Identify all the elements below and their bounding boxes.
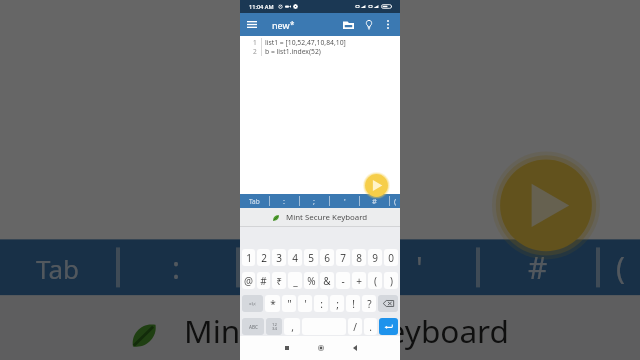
button[interactable]: Open file [338,13,358,36]
staticText: " [287,297,292,311]
staticText: 8 [356,251,362,265]
staticText: _ [293,274,298,288]
staticText: ? [367,297,372,311]
button[interactable]: 9 [368,249,382,266]
button[interactable]: 12 34 [266,318,282,335]
staticText: 9 [372,251,378,265]
button[interactable]: Tab [0,239,116,295]
staticText: ₹ [276,274,282,288]
button[interactable]: 1 [242,249,255,266]
button[interactable]: ; [330,295,344,312]
staticText: 2 [261,251,267,265]
button[interactable]: + [352,272,366,289]
button[interactable]: # [480,239,596,295]
staticText: # [260,274,267,288]
staticText: ' [304,297,307,311]
staticText: % [307,274,316,288]
staticText: ' [416,247,424,287]
staticText: new [272,19,290,31]
button[interactable]: # [360,194,389,208]
staticText: - [341,274,345,288]
button[interactable]: 3 [272,249,286,266]
button[interactable]: Recent apps [278,338,295,358]
staticText: : [172,247,184,287]
button[interactable]: # [257,272,270,289]
button[interactable]: Enter [379,318,398,335]
button[interactable]: Tab [240,194,269,208]
button[interactable]: ! [346,295,360,312]
button[interactable]: ' [360,239,476,295]
staticText: ABC [249,324,258,330]
button[interactable]: ABC [242,318,264,335]
staticText: @ [244,274,253,288]
staticText: list1 = [10,52,47,10,84,10] [265,38,346,47]
button[interactable]: Run program [492,151,600,259]
button[interactable]: ( [600,239,640,295]
button[interactable]: % [304,272,318,289]
staticText: Tab [36,251,80,287]
staticText: 1 [246,251,252,265]
button[interactable]: 5 [304,249,318,266]
staticText: # [528,247,548,287]
button[interactable]: " [282,295,296,312]
staticText: 1 [253,38,257,47]
button[interactable]: . [364,318,377,335]
button[interactable]: ) [384,272,398,289]
button[interactable]: 0 [384,249,398,266]
button[interactable]: ( [368,272,382,289]
staticText: b = list1.index(52) [265,47,321,56]
button[interactable]: 4 [288,249,302,266]
staticText: : [320,297,323,311]
staticText: ! [352,297,355,311]
button[interactable]: * [265,295,280,312]
staticText: ' [344,196,346,206]
button[interactable]: / [348,318,362,335]
staticText: Mint Secure Keyboard [286,212,368,223]
button[interactable]: =\< [242,295,263,312]
button[interactable]: : [314,295,328,312]
staticText: ; [336,297,339,311]
button[interactable]: , [284,318,300,335]
button[interactable]: ' [298,295,312,312]
button[interactable]: ' [330,194,359,208]
staticText: 12 34 [272,321,277,332]
staticText: 0 [388,251,394,265]
button[interactable]: Hints [359,13,379,36]
button[interactable]: - [336,272,350,289]
button[interactable]: _ [288,272,302,289]
button[interactable]: Back [346,338,363,358]
button[interactable]: ₹ [272,272,286,289]
staticText: * [290,19,295,30]
button[interactable]: ; [240,239,356,295]
button[interactable]: Run program [363,172,390,199]
button[interactable]: 8 [352,249,366,266]
button[interactable]: 2 [257,249,270,266]
staticText: + [356,274,362,288]
staticText: ( [394,196,397,206]
staticText: , [291,320,294,334]
button[interactable]: & [320,272,334,289]
staticText: 11:04 AM [249,3,274,11]
button[interactable]: 6 [320,249,334,266]
staticText: 5 [308,251,314,265]
button[interactable]: More options [380,13,396,36]
staticText: ( [374,274,377,288]
staticText: 4 [292,251,298,265]
button[interactable]: Backspace [378,295,398,312]
button[interactable]: Home [312,338,329,358]
button[interactable]: ; [300,194,329,208]
button[interactable]: ( [390,194,400,208]
button[interactable]: @ [242,272,255,289]
button[interactable]: : [270,194,299,208]
staticText: * [270,297,276,311]
staticText: 7 [340,251,346,265]
button[interactable]: Navigation menu [243,13,261,36]
button[interactable]: 7 [336,249,350,266]
button[interactable]: ? [362,295,376,312]
staticText: . [369,320,372,334]
staticText: ( [616,247,628,287]
staticText: Mint Secure Keyboard [184,311,512,355]
staticText: 2 [253,47,257,56]
button[interactable]: : [120,239,236,295]
